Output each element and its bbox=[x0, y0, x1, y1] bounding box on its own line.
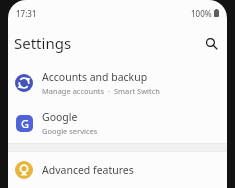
button[interactable]: Search bbox=[199, 31, 223, 55]
staticText: Accounts and backup bbox=[42, 70, 148, 84]
staticText: 17:31 bbox=[16, 8, 37, 19]
staticText: Advanced features bbox=[42, 163, 134, 177]
staticText: G bbox=[21, 116, 29, 131]
button[interactable]: Accounts and backup bbox=[8, 63, 227, 103]
button[interactable]: G bbox=[8, 103, 227, 143]
staticText: Google services bbox=[42, 126, 98, 136]
staticText: Manage accounts · Smart Switch bbox=[42, 86, 160, 96]
staticText: 100% bbox=[191, 8, 212, 19]
staticText: Google bbox=[42, 110, 78, 124]
staticText: Settings bbox=[14, 33, 72, 53]
button[interactable]: Advanced features bbox=[8, 152, 227, 188]
